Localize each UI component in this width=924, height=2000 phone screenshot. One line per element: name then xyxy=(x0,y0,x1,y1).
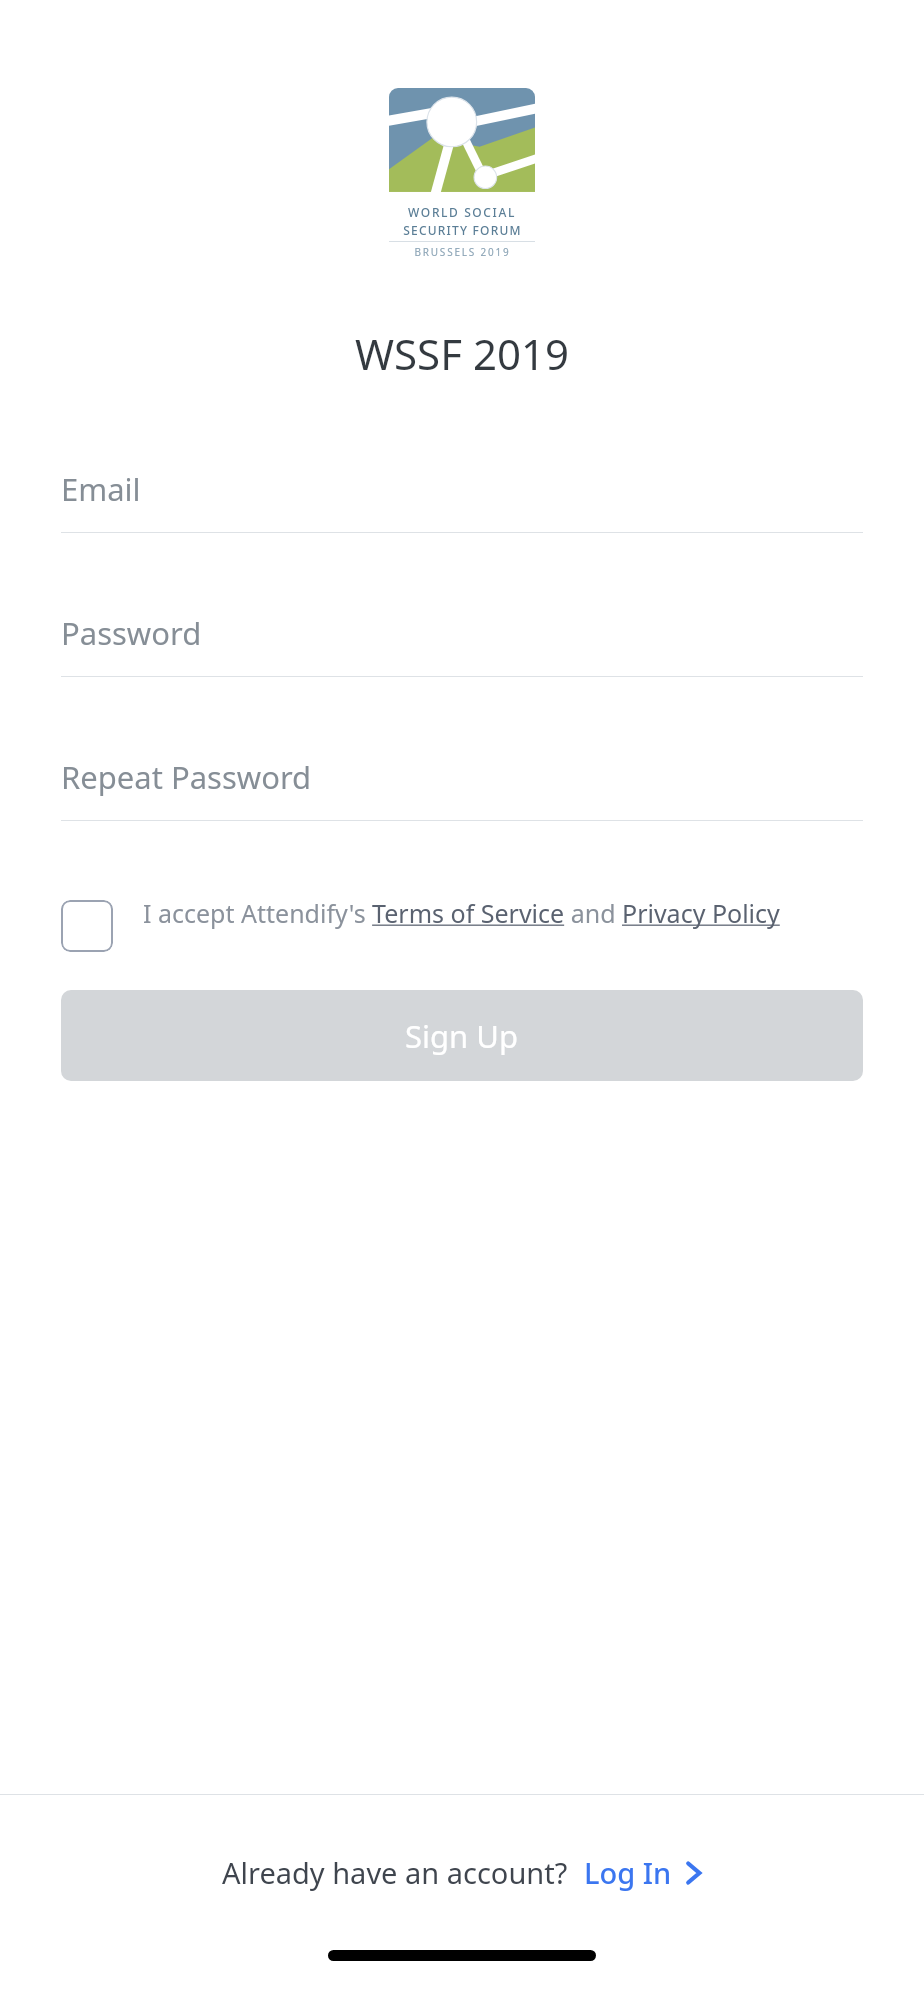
button[interactable]: Already have an account? xyxy=(222,1853,703,1892)
staticText: Password xyxy=(61,612,202,654)
button[interactable]: Repeat Password xyxy=(61,734,863,878)
staticText: Already have an account? xyxy=(222,1853,568,1892)
staticText: BRUSSELS 2019 xyxy=(414,245,511,259)
staticText: WSSF 2019 xyxy=(355,325,569,382)
staticText: Repeat Password xyxy=(61,756,312,798)
staticText: Email xyxy=(61,468,141,510)
button[interactable]: Sign Up xyxy=(61,990,863,1081)
button[interactable]: Password xyxy=(61,590,863,734)
button[interactable]: I accept Attendify's Terms of Service an… xyxy=(143,896,780,930)
staticText: WORLD SOCIAL xyxy=(408,204,516,220)
staticText: Log In xyxy=(584,1853,672,1892)
button[interactable]: Email xyxy=(61,446,863,590)
staticText: Sign Up xyxy=(405,1015,519,1057)
button[interactable]: Accept terms checkbox xyxy=(61,900,113,952)
staticText: SECURITY FORUM xyxy=(403,222,522,238)
